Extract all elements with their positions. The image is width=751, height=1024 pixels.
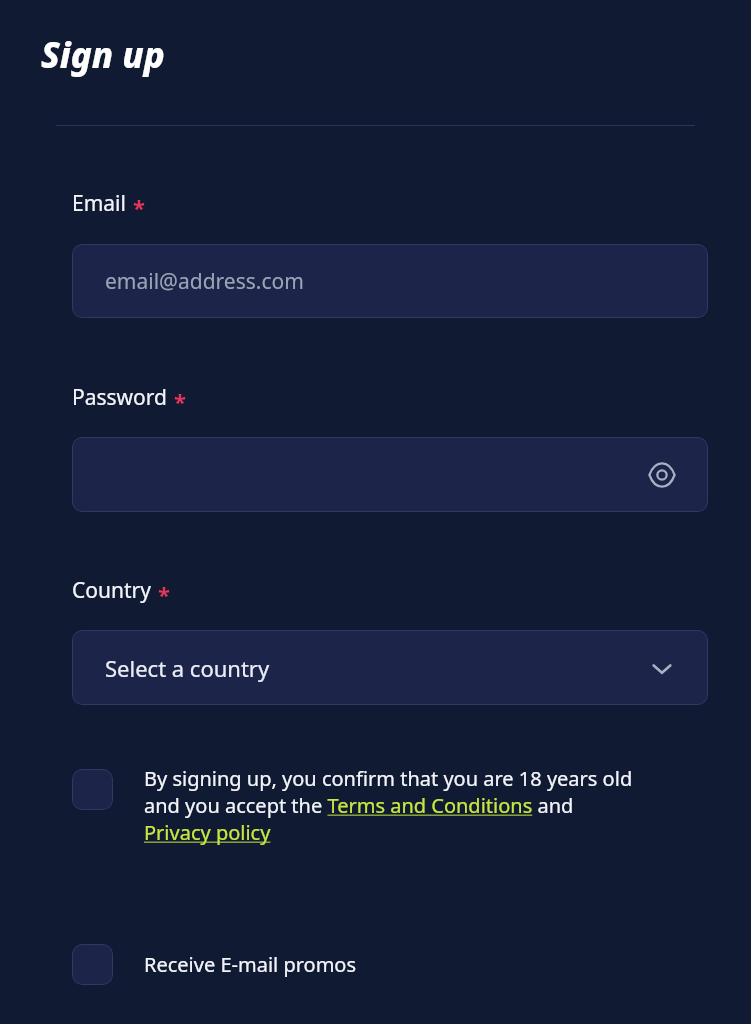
button[interactable]: By signing up, you confirm that you are … [72, 765, 692, 846]
staticText: and you accept the Terms and Conditions … [144, 792, 574, 819]
staticText: Select a country [105, 653, 270, 683]
staticText: By signing up, you confirm that you are … [144, 765, 633, 792]
staticText: * [133, 192, 145, 222]
staticText: Email [72, 189, 126, 218]
button[interactable]: Select a country [72, 630, 708, 705]
staticText: Sign up [41, 31, 165, 79]
button[interactable]: Show password [72, 437, 708, 512]
staticText: * [158, 579, 170, 609]
button[interactable]: Privacy policy [144, 819, 271, 846]
staticText: Country [72, 576, 151, 605]
button[interactable]: Show password [641, 454, 683, 496]
staticText: Password [72, 383, 167, 412]
staticText: * [174, 386, 186, 416]
button[interactable]: Receive E-mail promos [72, 944, 532, 985]
button[interactable]: email@address.com [72, 244, 708, 318]
staticText: Receive E-mail promos [144, 951, 357, 978]
staticText: email@address.com [105, 267, 304, 296]
